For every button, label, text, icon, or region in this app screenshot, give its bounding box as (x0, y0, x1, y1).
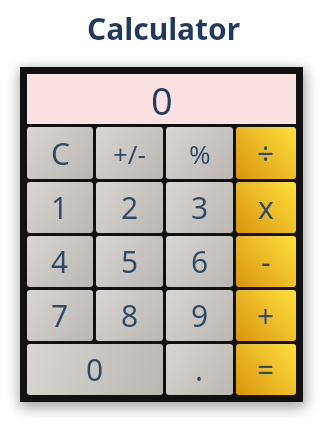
button[interactable]: ÷ (236, 127, 296, 179)
button[interactable]: % (166, 127, 233, 179)
button[interactable]: 0 (27, 344, 163, 395)
staticText: 6 (191, 241, 209, 282)
staticText: 4 (51, 241, 69, 282)
staticText: 0 (151, 74, 173, 124)
button[interactable]: - (236, 236, 296, 287)
staticText: 7 (51, 295, 69, 336)
staticText: % (189, 136, 211, 171)
button[interactable]: +/- (96, 127, 163, 179)
staticText: 5 (121, 241, 139, 282)
staticText: 0 (86, 349, 104, 390)
staticText: ÷ (257, 133, 275, 174)
staticText: C (51, 133, 70, 174)
button[interactable]: 5 (96, 236, 163, 287)
staticText: 1 (51, 187, 69, 228)
button[interactable]: 3 (166, 182, 233, 233)
button[interactable]: . (166, 344, 233, 395)
staticText: x (258, 187, 274, 228)
button[interactable]: 1 (27, 182, 93, 233)
button[interactable]: 4 (27, 236, 93, 287)
staticText: +/- (113, 136, 146, 171)
staticText: Calculator (87, 8, 241, 49)
button[interactable]: 8 (96, 290, 163, 341)
button[interactable]: 6 (166, 236, 233, 287)
button[interactable]: x (236, 182, 296, 233)
button[interactable]: + (236, 290, 296, 341)
staticText: . (195, 349, 204, 390)
staticText: 3 (191, 187, 209, 228)
button[interactable]: 2 (96, 182, 163, 233)
staticText: 2 (121, 187, 139, 228)
staticText: - (261, 241, 271, 282)
staticText: 8 (121, 295, 139, 336)
staticText: + (257, 295, 275, 336)
button[interactable]: 9 (166, 290, 233, 341)
button[interactable]: = (236, 344, 296, 395)
button[interactable]: C (27, 127, 93, 179)
staticText: 9 (191, 295, 209, 336)
staticText: = (257, 349, 275, 390)
button[interactable]: 7 (27, 290, 93, 341)
